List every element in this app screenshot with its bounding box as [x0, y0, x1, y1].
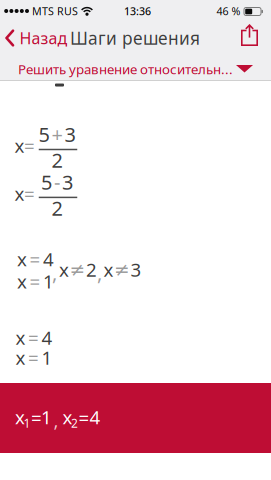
- staticText: Решить уравнение относительн...: [18, 60, 233, 78]
- staticText: ≠: [114, 259, 130, 280]
- staticText: ≠: [69, 259, 85, 280]
- staticText: x: [103, 257, 113, 282]
- staticText: x: [15, 345, 25, 370]
- staticText: 1: [41, 345, 52, 370]
- staticText: =: [78, 405, 89, 430]
- button[interactable]: Поделиться: [239, 24, 260, 47]
- staticText: =: [28, 345, 39, 370]
- staticText: =: [29, 247, 40, 271]
- staticText: 1: [41, 405, 52, 429]
- staticText: =: [24, 181, 35, 206]
- staticText: =: [24, 133, 35, 158]
- staticText: =: [28, 325, 39, 350]
- staticText: 5: [41, 169, 52, 195]
- staticText: x: [59, 257, 69, 282]
- staticText: 13:36: [124, 4, 151, 18]
- staticText: -: [54, 169, 60, 195]
- staticText: 3: [130, 257, 141, 282]
- staticText: x: [15, 325, 25, 350]
- staticText: x: [15, 405, 25, 429]
- button[interactable]: Решить уравнение относительн...: [0, 57, 271, 81]
- staticText: Шаги решения: [70, 26, 200, 49]
- staticText: x: [17, 269, 27, 294]
- staticText: =: [31, 405, 42, 430]
- staticText: MTS RUS: [32, 4, 78, 18]
- staticText: 1: [43, 269, 54, 294]
- staticText: 4: [43, 247, 54, 271]
- staticText: x: [14, 181, 24, 206]
- staticText: x: [14, 133, 24, 158]
- staticText: ,: [52, 259, 57, 286]
- staticText: ,: [97, 259, 102, 286]
- staticText: 3: [64, 121, 75, 147]
- staticText: 2: [71, 415, 78, 431]
- staticText: x: [62, 405, 72, 429]
- staticText: x: [17, 247, 27, 271]
- staticText: 1: [23, 415, 30, 431]
- staticText: 2: [51, 147, 62, 173]
- staticText: 3: [62, 169, 73, 195]
- staticText: 4: [89, 405, 100, 429]
- staticText: ,: [53, 408, 58, 433]
- staticText: 4: [41, 325, 52, 350]
- staticText: 2: [51, 195, 62, 221]
- button[interactable]: Назад: [5, 27, 77, 49]
- staticText: 2: [86, 257, 97, 282]
- staticText: 46 %: [216, 4, 240, 18]
- staticText: =: [29, 269, 40, 294]
- staticText: +: [51, 121, 62, 147]
- staticText: Назад: [19, 27, 67, 49]
- staticText: 5: [38, 121, 49, 147]
